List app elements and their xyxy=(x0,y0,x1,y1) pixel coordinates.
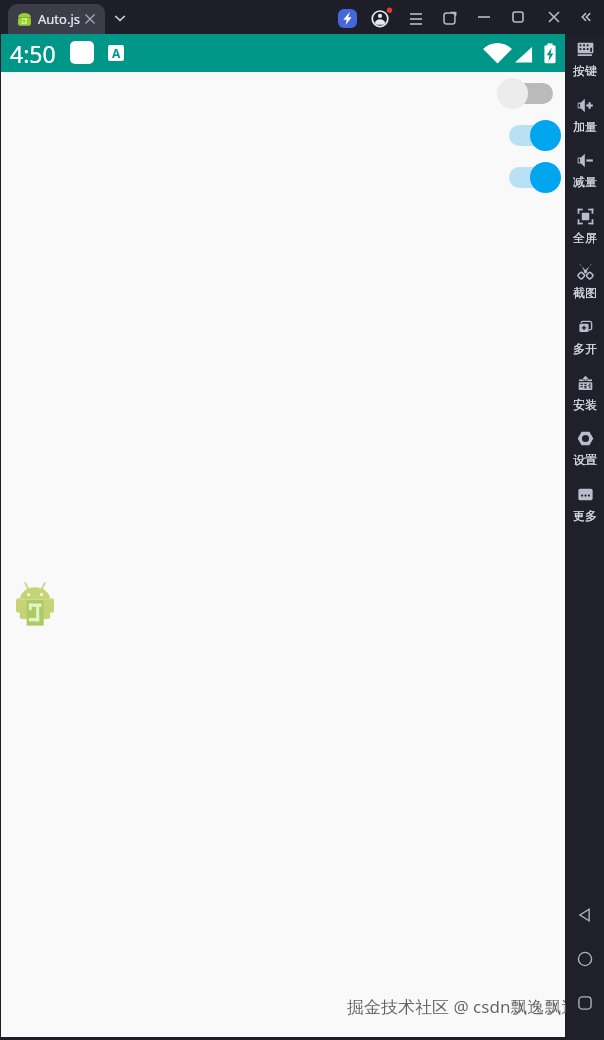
button[interactable]: 设置 xyxy=(566,430,604,476)
button[interactable]: 多开 xyxy=(566,319,604,365)
button[interactable]: 安装 xyxy=(566,375,604,421)
staticText: 4:50 xyxy=(10,38,56,69)
staticText: 设置 xyxy=(573,452,597,467)
staticText: A xyxy=(112,45,121,61)
staticText: 更多 xyxy=(573,508,597,523)
button[interactable]: Close xyxy=(539,2,568,31)
staticText: 掘金技术社区 @ csdn飘逸飘逸 xyxy=(347,995,579,1018)
button[interactable]: Rotate xyxy=(435,2,464,31)
button[interactable]: Account xyxy=(370,6,392,28)
button[interactable]: Recents xyxy=(566,989,604,1017)
button[interactable]: Auto.js xyxy=(8,4,105,34)
button[interactable]: Boost xyxy=(334,5,360,31)
staticText: 加量 xyxy=(573,119,597,134)
staticText: 截图 xyxy=(573,285,597,300)
button[interactable]: Switch on xyxy=(508,160,566,198)
button[interactable]: 截图 xyxy=(566,263,604,309)
button[interactable]: Minimize xyxy=(469,2,498,31)
staticText: 减量 xyxy=(573,174,597,189)
button[interactable]: Back xyxy=(566,901,604,929)
button[interactable]: More tabs xyxy=(110,8,130,28)
button[interactable]: 全屏 xyxy=(566,208,604,254)
button[interactable]: Collapse xyxy=(571,2,600,31)
button[interactable]: 按键 xyxy=(566,41,604,87)
button[interactable]: 减量 xyxy=(566,152,604,198)
staticText: 按键 xyxy=(573,63,597,78)
button[interactable]: 加量 xyxy=(566,97,604,143)
button[interactable]: Home xyxy=(566,945,604,973)
button[interactable]: 更多 xyxy=(566,486,604,532)
button[interactable]: Switch on xyxy=(508,118,566,156)
staticText: 全屏 xyxy=(573,230,597,245)
button[interactable]: Menu xyxy=(401,2,430,31)
staticText: Auto.js xyxy=(38,10,80,28)
button[interactable]: Maximize xyxy=(503,2,532,31)
staticText: 安装 xyxy=(573,397,597,412)
staticText: 多开 xyxy=(573,341,597,356)
button[interactable]: Switch off xyxy=(496,76,554,114)
